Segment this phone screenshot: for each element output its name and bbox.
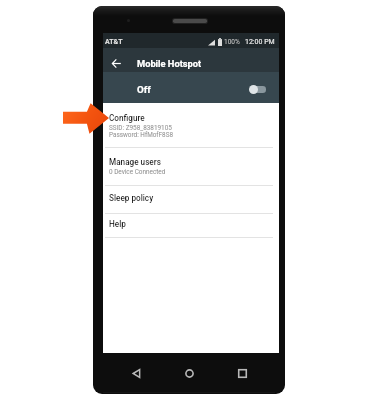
staticText: Off [137, 84, 151, 95]
button[interactable]: Recent apps [216, 361, 269, 386]
button[interactable]: Home [163, 361, 216, 386]
staticText: Mobile Hotspot [137, 58, 202, 69]
button[interactable]: Configure [103, 103, 279, 147]
button[interactable]: Navigate up [103, 48, 127, 72]
staticText: Sleep policy [109, 193, 154, 203]
staticText: Configure [109, 113, 145, 123]
button[interactable]: Back [110, 361, 163, 386]
button[interactable]: Off [103, 72, 279, 103]
staticText: Password: HfMofF8S8 [109, 131, 174, 139]
staticText: Manage users [109, 157, 161, 167]
button[interactable]: Manage users [103, 147, 279, 186]
staticText: AT&T [105, 38, 123, 46]
button[interactable]: Sleep policy [103, 185, 279, 213]
staticText: Help [109, 219, 126, 229]
staticText: 100% [224, 38, 240, 46]
staticText: 0 Device Connected [109, 168, 166, 176]
staticText: 12:00 PM [245, 38, 275, 46]
button[interactable]: Help [103, 213, 279, 237]
staticText: SSID: Z958_83819105 [109, 124, 172, 132]
